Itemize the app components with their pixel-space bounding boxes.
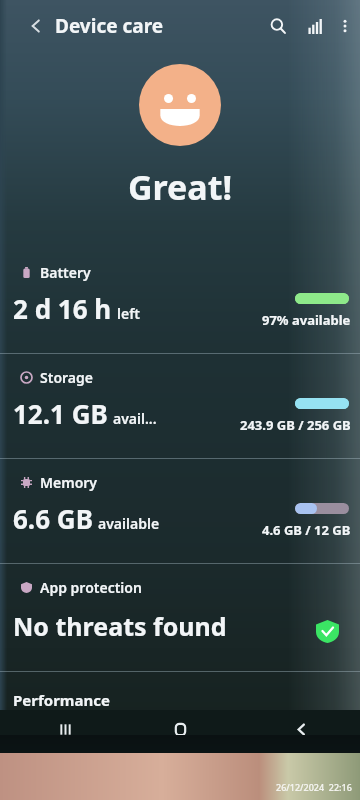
button[interactable]: More options (331, 12, 359, 40)
staticText: 2 d 16 h (13, 291, 112, 326)
staticText: left (117, 304, 141, 323)
button[interactable]: Storage (0, 354, 360, 458)
staticText: 26/12/2024 22:16 (276, 781, 352, 793)
button[interactable]: Usage statistics (300, 11, 330, 41)
staticText: avail... (113, 409, 157, 428)
staticText: Storage (40, 368, 93, 387)
other: Protected (316, 620, 339, 643)
button[interactable]: Memory (0, 459, 360, 563)
staticText: Great! (0, 164, 360, 210)
staticText: 4.6 GB / 12 GB (262, 521, 351, 539)
staticText: Device care (55, 13, 164, 39)
button[interactable]: Recent apps (46, 710, 84, 748)
staticText: 6.6 GB (13, 501, 93, 536)
staticText: 97% available (262, 311, 351, 329)
button[interactable]: Back (282, 710, 320, 748)
staticText: 12.1 GB (13, 396, 108, 431)
staticText: 243.9 GB / 256 GB (240, 416, 351, 434)
button[interactable]: Search (263, 11, 293, 41)
button[interactable]: Home (161, 710, 199, 748)
staticText: available (98, 514, 160, 533)
staticText: App protection (40, 578, 142, 597)
button[interactable]: App protection (0, 564, 360, 671)
staticText: Memory (40, 473, 98, 492)
staticText: Battery (40, 263, 91, 282)
staticText: No threats found (13, 609, 227, 643)
staticText: Performance (13, 690, 110, 710)
button[interactable]: Back (22, 12, 50, 40)
button[interactable]: Battery (0, 249, 360, 353)
